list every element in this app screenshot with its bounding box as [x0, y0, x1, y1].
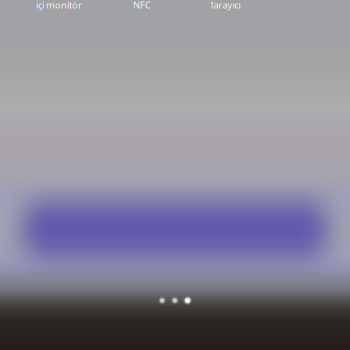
- staticText: içi monitör: [36, 0, 82, 11]
- staticText: Tarayıcı: [209, 0, 240, 11]
- staticText: NFC: [133, 0, 151, 11]
- button[interactable]: Add a Control: [0, 173, 350, 286]
